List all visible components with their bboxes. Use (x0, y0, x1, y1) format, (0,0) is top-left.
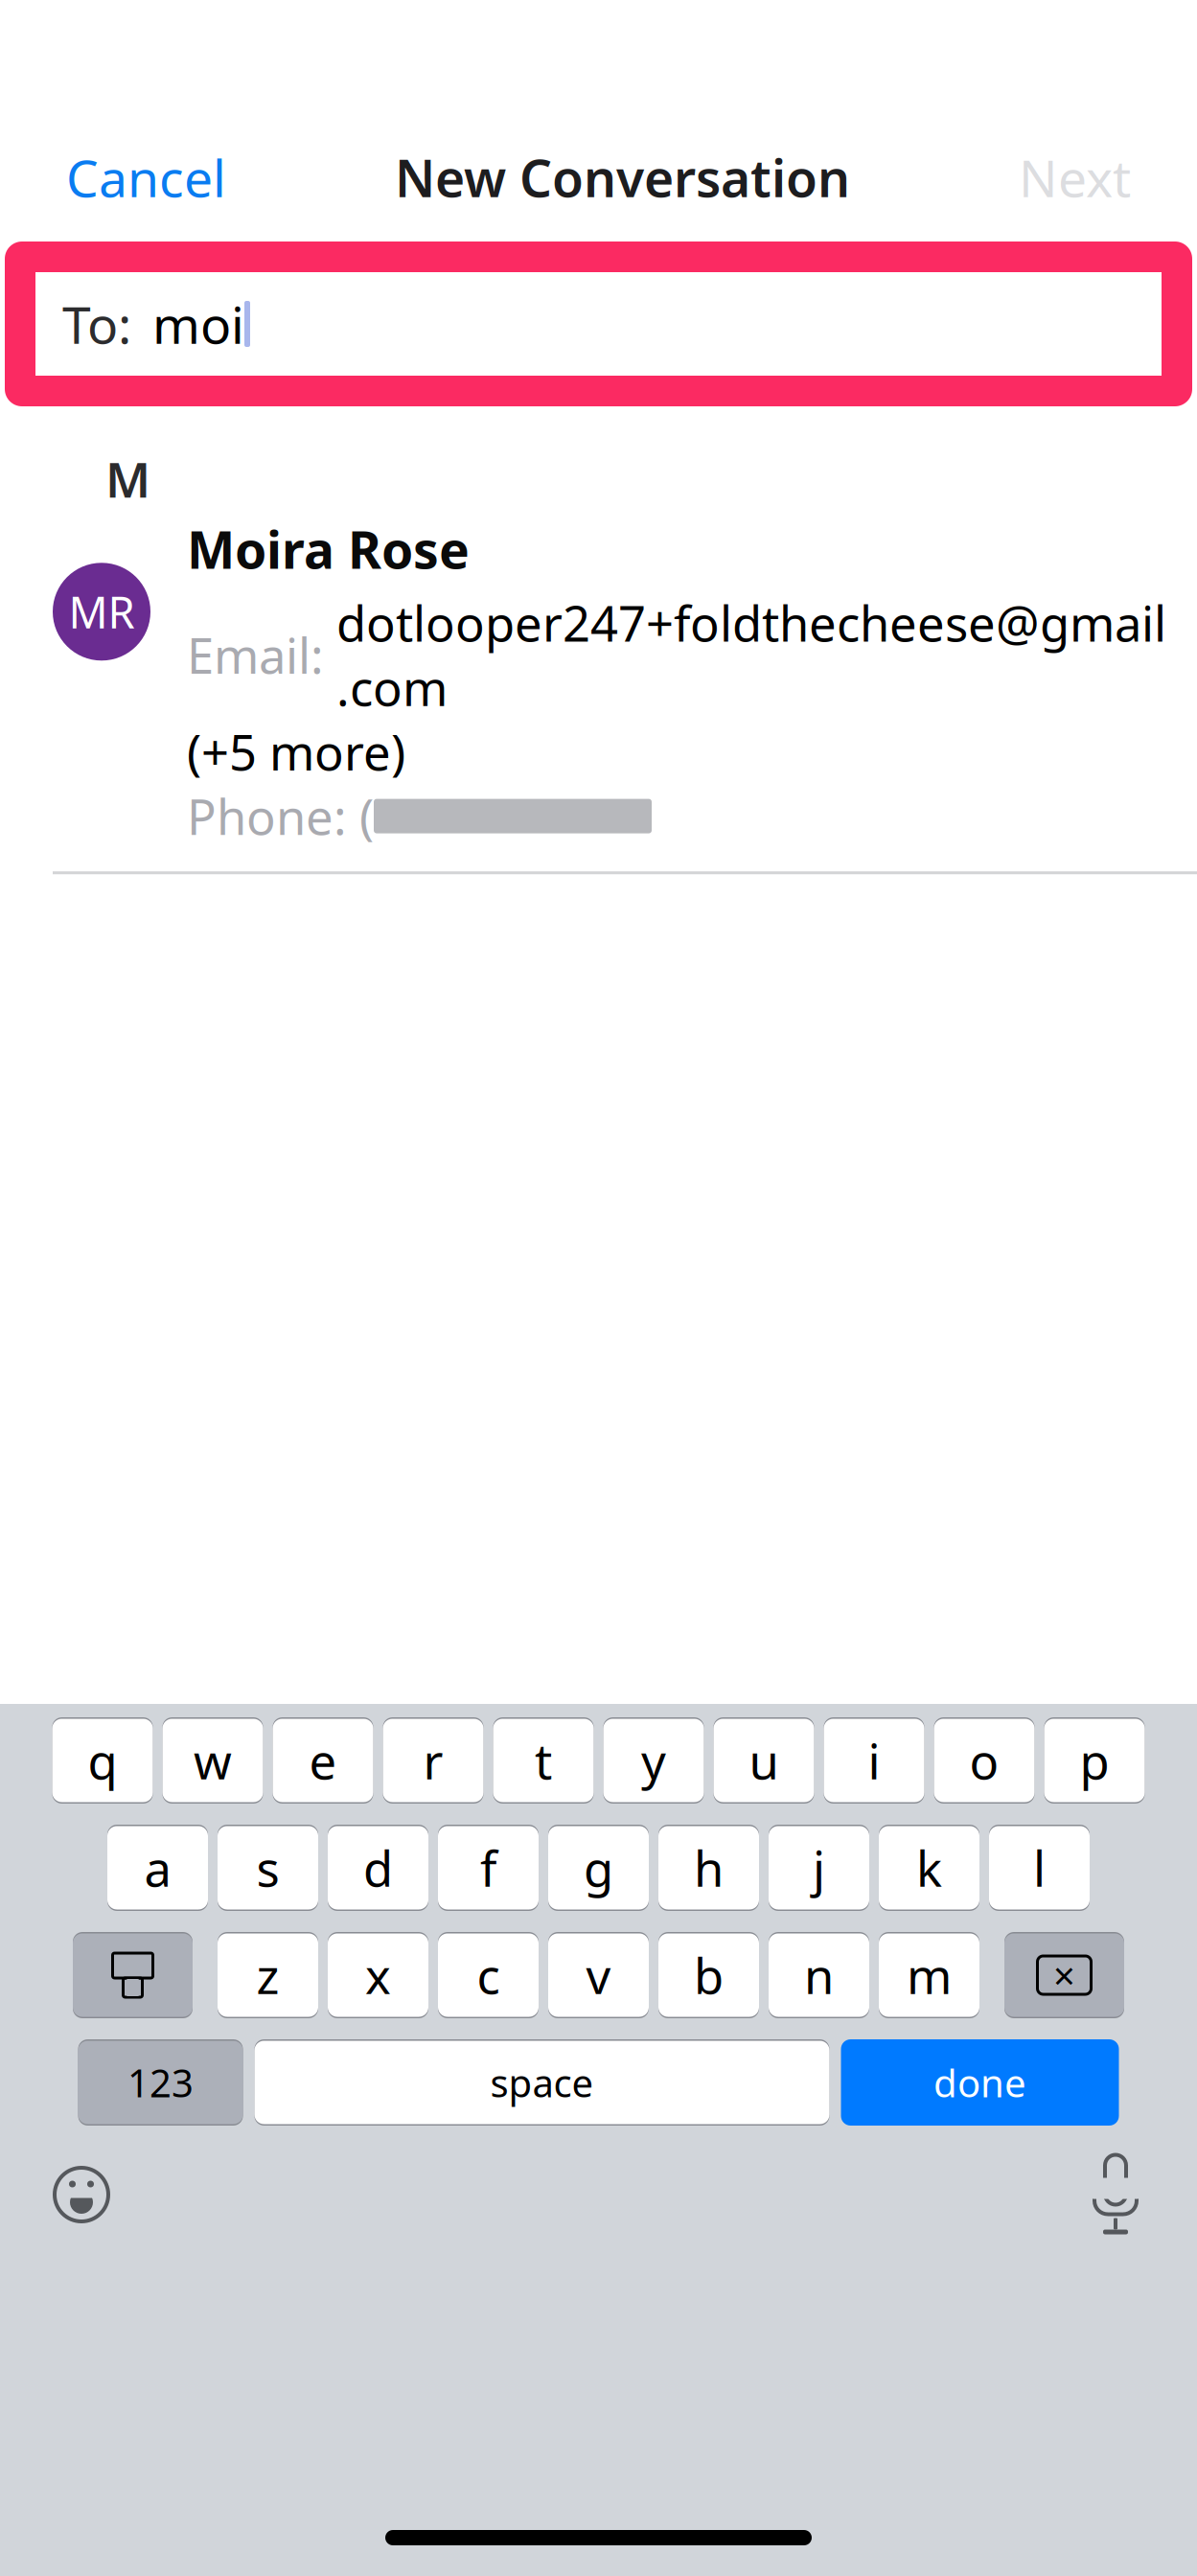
staticText: MR (69, 583, 135, 641)
staticText: z (256, 1943, 279, 2007)
button[interactable]: Cancel (53, 134, 240, 221)
button[interactable]: d (328, 1825, 428, 1911)
button[interactable]: c (438, 1932, 539, 2018)
staticText: b (694, 1943, 724, 2007)
staticText: m (907, 1943, 952, 2007)
button[interactable]: To: (35, 272, 1162, 376)
staticText: x (365, 1943, 391, 2007)
staticText: a (144, 1836, 171, 1900)
button[interactable]: q (52, 1717, 153, 1804)
staticText: h (694, 1836, 724, 1900)
staticText: l (1033, 1836, 1046, 1900)
button[interactable]: r (383, 1717, 483, 1804)
button[interactable]: Next (1005, 134, 1144, 221)
staticText: j (813, 1836, 825, 1900)
button[interactable]: Shift (73, 1932, 193, 2018)
staticText: u (749, 1728, 779, 1793)
staticText: p (1080, 1728, 1109, 1793)
staticText: d (363, 1836, 393, 1900)
staticText: c (477, 1943, 500, 2007)
staticText: space (490, 2057, 594, 2108)
button[interactable]: h (658, 1825, 759, 1911)
staticText: 123 (127, 2057, 194, 2108)
staticText: n (804, 1943, 834, 2007)
staticText: M (105, 447, 150, 511)
button[interactable]: 123 (78, 2039, 243, 2126)
staticText: e (309, 1728, 337, 1793)
staticText: a (144, 1836, 171, 1900)
button[interactable]: Emoji (48, 2161, 115, 2228)
staticText: s (256, 1836, 279, 1900)
staticText: k (916, 1836, 942, 1900)
staticText: h (694, 1836, 724, 1900)
staticText: dotlooper247+foldthecheese@gmail.com (336, 590, 1166, 719)
button[interactable]: s (218, 1825, 318, 1911)
staticText: p (1080, 1728, 1109, 1793)
staticText: Cancel (66, 143, 226, 211)
button[interactable]: l (989, 1825, 1090, 1911)
staticText: n (804, 1943, 834, 2007)
button[interactable]: Delete (1004, 1932, 1124, 2018)
button[interactable]: g (548, 1825, 649, 1911)
button[interactable]: j (769, 1825, 869, 1911)
button[interactable]: y (603, 1717, 704, 1804)
staticText: w (194, 1728, 232, 1793)
button[interactable]: a (107, 1825, 208, 1911)
staticText: o (969, 1728, 999, 1793)
staticText: m (907, 1943, 952, 2007)
staticText: d (363, 1836, 393, 1900)
staticText: y (641, 1728, 666, 1793)
staticText: x (365, 1943, 391, 2007)
staticText: Next (1019, 143, 1131, 211)
button[interactable]: space (254, 2039, 829, 2126)
staticText: Email: (187, 623, 336, 687)
staticText: s (256, 1836, 279, 1900)
staticText: t (535, 1728, 552, 1793)
staticText: u (749, 1728, 779, 1793)
button[interactable]: k (879, 1825, 979, 1911)
staticText: New Conversation (395, 143, 850, 211)
staticText: done (933, 2057, 1026, 2108)
button[interactable]: done (841, 2039, 1119, 2126)
button[interactable]: z (218, 1932, 318, 2018)
staticText: Phone: ( (187, 784, 374, 848)
button[interactable]: b (658, 1932, 759, 2018)
button[interactable]: MR (0, 511, 1197, 848)
staticText: (+5 more) (187, 719, 405, 784)
staticText: f (480, 1836, 496, 1900)
button[interactable]: f (438, 1825, 539, 1911)
staticText: 123 (127, 2057, 194, 2108)
button[interactable]: o (934, 1717, 1035, 1804)
staticText: i (868, 1728, 880, 1793)
staticText: j (813, 1836, 825, 1900)
button[interactable]: i (824, 1717, 924, 1804)
button[interactable]: Dictate (1082, 2150, 1149, 2239)
button[interactable]: w (162, 1717, 263, 1804)
staticText: v (586, 1943, 611, 2007)
staticText: r (423, 1728, 443, 1793)
staticText: k (916, 1836, 942, 1900)
button[interactable]: e (273, 1717, 373, 1804)
staticText: c (477, 1943, 500, 2007)
button[interactable]: v (548, 1932, 649, 2018)
staticText: r (423, 1728, 443, 1793)
staticText: To: (62, 290, 131, 358)
staticText: g (584, 1836, 613, 1900)
staticText: b (694, 1943, 724, 2007)
staticText: g (584, 1836, 613, 1900)
staticText: w (194, 1728, 232, 1793)
button[interactable]: u (714, 1717, 814, 1804)
button[interactable]: t (493, 1717, 594, 1804)
staticText: e (309, 1728, 337, 1793)
staticText: l (1033, 1836, 1046, 1900)
staticText: q (88, 1728, 117, 1793)
staticText: Moira Rose (187, 515, 470, 583)
button[interactable]: m (879, 1932, 979, 2018)
button[interactable]: p (1044, 1717, 1145, 1804)
staticText: t (535, 1728, 552, 1793)
button[interactable]: n (769, 1932, 869, 2018)
staticText: v (586, 1943, 611, 2007)
staticText: o (969, 1728, 999, 1793)
staticText: space (490, 2057, 594, 2108)
button[interactable]: x (328, 1932, 428, 2018)
